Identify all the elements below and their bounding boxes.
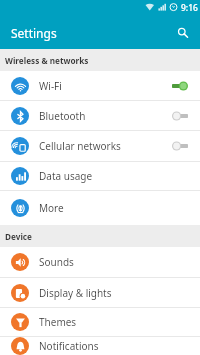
- button[interactable]: Themes: [0, 308, 200, 337]
- button[interactable]: Bluetooth: [0, 101, 200, 131]
- button[interactable]: Wi-Fi: [0, 71, 200, 101]
- button[interactable]: Search: [171, 21, 195, 45]
- button[interactable]: Cellular networks: [0, 131, 200, 162]
- staticText: Cellular networks: [39, 139, 121, 153]
- staticText: Wireless & networks: [5, 55, 89, 66]
- staticText: Data usage: [39, 169, 93, 183]
- button[interactable]: Data usage: [0, 162, 200, 191]
- button[interactable]: Sounds: [0, 247, 200, 278]
- staticText: 9:16: [181, 2, 198, 14]
- staticText: Themes: [39, 315, 77, 329]
- staticText: Notifications: [39, 339, 99, 353]
- staticText: Sounds: [39, 255, 74, 269]
- staticText: Bluetooth: [39, 109, 86, 123]
- button[interactable]: Display & lights: [0, 278, 200, 308]
- staticText: Display & lights: [39, 286, 112, 300]
- button[interactable]: Notifications: [0, 337, 200, 355]
- staticText: More: [39, 201, 64, 215]
- button[interactable]: More: [0, 191, 200, 225]
- staticText: Wi-Fi: [39, 79, 62, 93]
- staticText: Settings: [11, 25, 57, 41]
- staticText: Device: [5, 231, 32, 242]
